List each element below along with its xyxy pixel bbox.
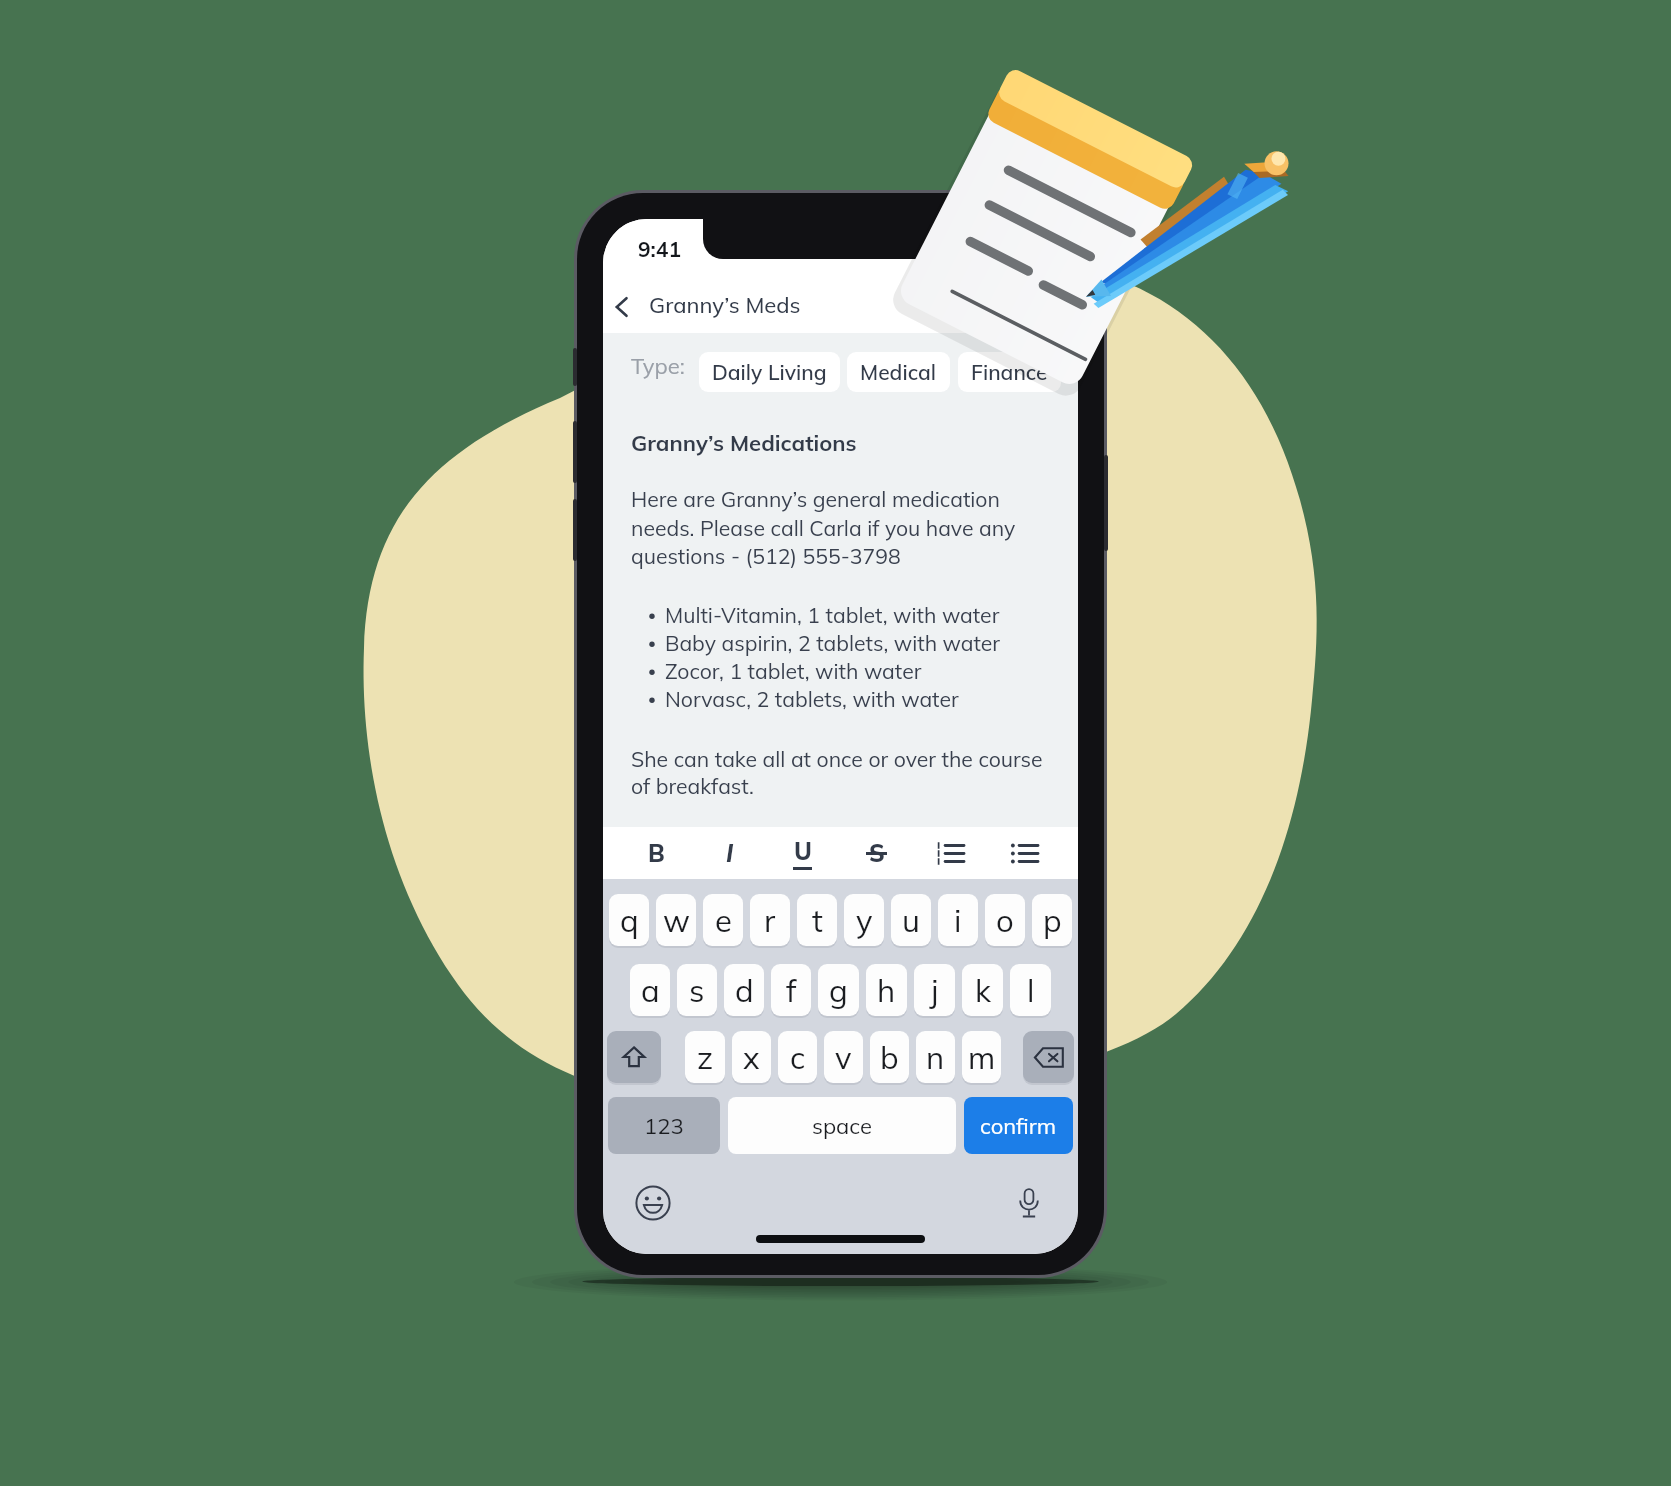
button[interactable]: Back (605, 291, 637, 323)
staticText: x (743, 1038, 760, 1077)
staticText: l (1027, 971, 1035, 1010)
staticText: Finance (971, 359, 1048, 385)
staticText: Medical (860, 359, 937, 385)
staticText: Norvasc, 2 tablets, with water (665, 686, 959, 713)
staticText: b (880, 1038, 899, 1077)
staticText: Granny’s Meds (649, 291, 801, 319)
button[interactable]: confirm (964, 1097, 1073, 1154)
staticText: m (968, 1038, 996, 1077)
staticText: Daily Living (712, 359, 827, 385)
staticText: r (764, 901, 776, 940)
button[interactable]: Shift (607, 1031, 661, 1083)
staticText: e (715, 901, 732, 940)
button[interactable]: r (750, 894, 790, 946)
staticText: g (829, 971, 848, 1010)
button[interactable]: y (844, 894, 884, 946)
button[interactable]: Underline (766, 827, 839, 879)
button[interactable]: e (703, 894, 743, 946)
staticText: Type: (631, 352, 685, 380)
button[interactable]: s (677, 964, 717, 1016)
button[interactable]: z (685, 1031, 725, 1083)
staticText: Zocor, 1 tablet, with water (665, 658, 922, 685)
button[interactable]: l (1010, 964, 1051, 1016)
button[interactable]: x (732, 1031, 771, 1083)
staticText: U (794, 836, 812, 866)
staticText: v (835, 1038, 852, 1077)
staticText: t (812, 901, 823, 940)
staticText: Here are Granny’s general medication nee… (631, 486, 1016, 569)
button[interactable]: Voice input (1013, 1187, 1045, 1219)
button[interactable]: Medical (847, 352, 950, 392)
button[interactable]: i (938, 894, 978, 946)
staticText: i (954, 901, 962, 940)
button[interactable]: h (866, 964, 907, 1016)
button[interactable]: Strikethrough (839, 827, 913, 879)
button[interactable]: q (609, 894, 649, 946)
staticText: w (663, 901, 690, 940)
staticText: n (926, 1038, 945, 1077)
staticText: y (856, 901, 873, 940)
staticText: Baby aspirin, 2 tablets, with water (665, 630, 1001, 657)
staticText: p (1043, 901, 1062, 940)
button[interactable]: n (916, 1031, 955, 1083)
staticText: B (648, 838, 665, 868)
button[interactable]: j (914, 964, 955, 1016)
button[interactable]: u (891, 894, 931, 946)
button[interactable]: g (818, 964, 859, 1016)
staticText: space (812, 1112, 872, 1140)
button[interactable]: Daily Living (699, 352, 840, 392)
button[interactable]: Emoji (635, 1185, 671, 1221)
button[interactable]: a (630, 964, 670, 1016)
button[interactable]: Bold (620, 827, 693, 879)
staticText: confirm (980, 1112, 1057, 1140)
button[interactable]: t (797, 894, 837, 946)
staticText: q (620, 901, 639, 940)
staticText: S (869, 838, 885, 868)
staticText: Granny’s Medications (631, 429, 857, 457)
button[interactable]: b (870, 1031, 909, 1083)
button[interactable]: Backspace (1023, 1031, 1074, 1083)
staticText: z (697, 1038, 714, 1077)
button[interactable]: m (962, 1031, 1001, 1083)
staticText: 123 (644, 1112, 684, 1140)
staticText: u (902, 901, 920, 940)
staticText: c (790, 1038, 806, 1077)
button[interactable]: p (1032, 894, 1072, 946)
staticText: Multi-Vitamin, 1 tablet, with water (665, 602, 1000, 629)
staticText: d (735, 971, 754, 1010)
staticText: h (877, 971, 896, 1010)
staticText: k (975, 971, 991, 1010)
staticText: a (641, 971, 660, 1010)
button[interactable]: d (724, 964, 764, 1016)
staticText: o (996, 901, 1014, 940)
button[interactable]: Bulleted list (987, 827, 1061, 879)
button[interactable]: c (778, 1031, 817, 1083)
staticText: 9:41 (638, 236, 682, 262)
button[interactable]: Back (603, 290, 1078, 333)
button[interactable]: 123 (608, 1097, 720, 1154)
button[interactable]: space (728, 1097, 956, 1154)
button[interactable]: o (985, 894, 1025, 946)
staticText: s (689, 971, 705, 1010)
staticText: f (786, 971, 797, 1010)
button[interactable]: w (656, 894, 696, 946)
button[interactable]: v (824, 1031, 863, 1083)
staticText: j (931, 971, 939, 1010)
staticText: She can take all at once or over the cou… (631, 746, 1043, 800)
staticText: I (726, 838, 734, 868)
button[interactable]: Finance (958, 352, 1061, 392)
button[interactable]: Numbered list (913, 827, 987, 879)
button[interactable]: k (962, 964, 1003, 1016)
button[interactable]: Italic (693, 827, 766, 879)
button[interactable]: f (771, 964, 811, 1016)
